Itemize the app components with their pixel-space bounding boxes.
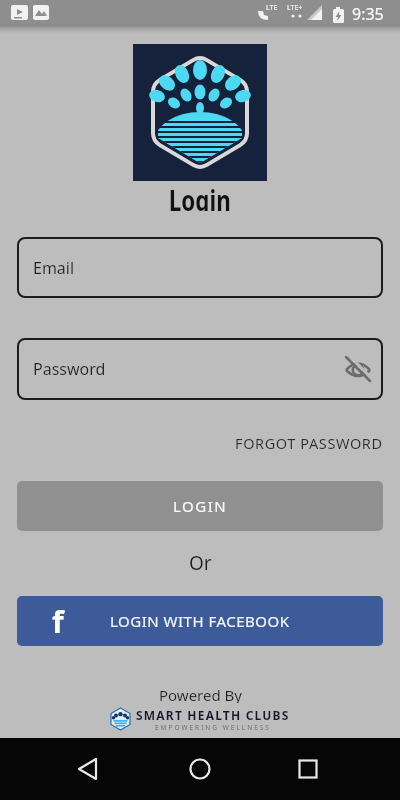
staticText: LTE+ (287, 3, 303, 13)
staticText: Login (169, 181, 231, 211)
staticText: Password (33, 358, 106, 380)
button[interactable]: Password (17, 338, 383, 400)
staticText: LOGIN WITH FACEBOOK (110, 611, 290, 631)
staticText: EMPOWERING WELLNESS (155, 723, 271, 731)
staticText: Email (33, 257, 75, 279)
staticText: LTE (266, 3, 278, 13)
button[interactable]: Email (17, 237, 383, 298)
button[interactable]: FORGOT PASSWORD (235, 433, 383, 450)
staticText: SMART HEALTH CLUBS (136, 707, 290, 723)
staticText: Or (189, 550, 212, 572)
staticText: f (52, 601, 64, 642)
button[interactable] (180, 749, 220, 789)
button[interactable] (343, 354, 373, 384)
button[interactable]: LOGIN (17, 481, 383, 531)
button[interactable]: f (17, 596, 383, 646)
button[interactable] (68, 749, 108, 789)
staticText: Powered By (159, 685, 242, 703)
button[interactable] (288, 749, 328, 789)
staticText: 9:35 (352, 3, 384, 25)
staticText: LOGIN (173, 496, 228, 516)
